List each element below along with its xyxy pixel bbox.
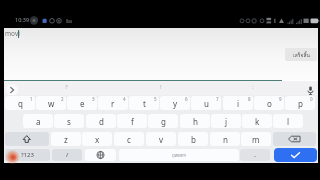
staticText: QWERTY xyxy=(172,153,187,158)
staticText: 3 xyxy=(92,96,95,102)
staticText: 5 xyxy=(154,96,157,102)
button[interactable]: ?123 xyxy=(5,149,50,161)
button[interactable]: / xyxy=(52,149,82,161)
button[interactable] xyxy=(273,132,316,146)
button[interactable]: r xyxy=(98,96,128,110)
button[interactable]: m xyxy=(241,132,271,146)
staticText: n xyxy=(223,134,228,145)
button[interactable]: q xyxy=(5,96,35,110)
button[interactable]: c xyxy=(114,132,144,146)
button[interactable]: v xyxy=(146,132,176,146)
staticText: r xyxy=(111,98,115,109)
button[interactable]: . xyxy=(240,149,270,161)
staticText: 1 xyxy=(30,96,33,102)
button[interactable]: o xyxy=(254,96,284,110)
staticText: 0 xyxy=(310,96,313,102)
staticText: v xyxy=(159,134,164,145)
button[interactable]: d xyxy=(86,114,116,128)
button[interactable]: เสร็จสิ้น xyxy=(285,48,317,61)
staticText: เสร็จสิ้น xyxy=(293,51,310,59)
staticText: 10:39 xyxy=(15,16,30,23)
staticText: i xyxy=(237,98,240,109)
button[interactable]: h xyxy=(180,114,210,128)
staticText: 6 xyxy=(185,96,188,102)
staticText: t xyxy=(143,98,146,109)
staticText: a xyxy=(36,116,41,127)
button[interactable]: l xyxy=(273,114,303,128)
staticText: x xyxy=(95,134,100,145)
staticText: c xyxy=(127,134,131,145)
button[interactable]: t xyxy=(129,96,159,110)
staticText: g xyxy=(161,116,166,127)
button[interactable]: e xyxy=(67,96,97,110)
staticText: l xyxy=(287,116,290,127)
button[interactable]: j xyxy=(211,114,241,128)
button[interactable]: i xyxy=(223,96,253,110)
button[interactable]: k xyxy=(242,114,272,128)
button[interactable]: g xyxy=(148,114,178,128)
button[interactable]: s xyxy=(54,114,84,128)
staticText: 2 xyxy=(61,96,64,102)
button[interactable]: w xyxy=(36,96,66,110)
staticText: p xyxy=(298,98,303,109)
button[interactable]: a xyxy=(23,114,53,128)
button[interactable]: n xyxy=(210,132,240,146)
staticText: m xyxy=(252,134,260,145)
button[interactable] xyxy=(274,148,317,162)
staticText: j xyxy=(225,116,228,127)
button[interactable] xyxy=(85,149,116,161)
button[interactable]: b xyxy=(178,132,208,146)
staticText: b xyxy=(191,134,196,145)
staticText: q xyxy=(18,98,23,109)
staticText: 9 xyxy=(279,96,282,102)
staticText: z xyxy=(64,134,68,145)
button[interactable]: p xyxy=(285,96,315,110)
staticText: d xyxy=(99,116,104,127)
staticText: . xyxy=(254,150,256,160)
staticText: u xyxy=(204,98,209,109)
staticText: : xyxy=(252,83,254,91)
staticText: s xyxy=(67,116,71,127)
staticText: 4 xyxy=(123,96,126,102)
staticText: 8 xyxy=(248,96,251,102)
staticText: h xyxy=(193,116,198,127)
staticText: ! xyxy=(160,83,162,91)
button[interactable]: y xyxy=(160,96,190,110)
staticText: o xyxy=(267,98,272,109)
staticText: f xyxy=(131,116,134,127)
staticText: y xyxy=(173,98,178,109)
button[interactable]: u xyxy=(191,96,221,110)
staticText: ?123 xyxy=(21,151,34,159)
button[interactable]: z xyxy=(51,132,81,146)
button[interactable]: x xyxy=(82,132,112,146)
staticText: e xyxy=(80,98,85,109)
button[interactable]: f xyxy=(117,114,147,128)
staticText: movi xyxy=(5,29,20,38)
button[interactable] xyxy=(306,86,315,96)
staticText: ? xyxy=(65,83,68,91)
staticText: k xyxy=(255,116,260,127)
staticText: 7 xyxy=(216,96,219,102)
button[interactable] xyxy=(5,132,49,146)
button[interactable]: QWERTY xyxy=(119,149,239,161)
staticText: w xyxy=(48,98,55,109)
button[interactable] xyxy=(6,84,18,96)
staticText: / xyxy=(66,151,69,159)
